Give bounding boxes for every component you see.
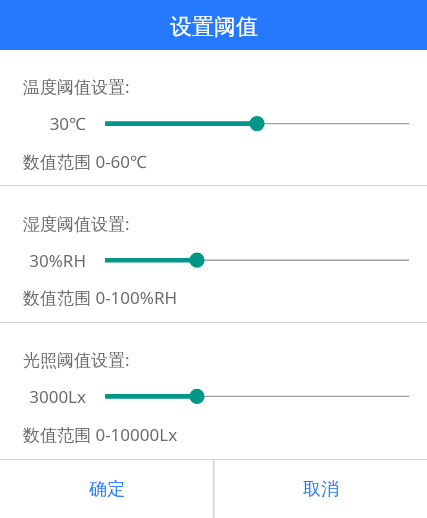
button[interactable]: 光照阈值滑块	[95, 382, 419, 410]
button[interactable]: 湿度阈值滑块	[95, 246, 419, 274]
staticText: 取消	[303, 478, 339, 501]
staticText: 确定	[89, 478, 125, 501]
staticText: 温度阈值设置:	[23, 75, 130, 98]
staticText: 光照阈值设置:	[23, 348, 130, 371]
button[interactable]: 取消	[215, 460, 427, 518]
staticText: 湿度阈值设置:	[23, 212, 130, 235]
staticText: 30℃	[0, 112, 86, 135]
staticText: 3000Lx	[0, 385, 86, 408]
staticText: 设置阈值	[170, 13, 258, 41]
button[interactable]: 温度阈值滑块	[95, 110, 419, 138]
staticText: 数值范围 0-60℃	[23, 150, 147, 173]
staticText: 30%RH	[0, 249, 86, 272]
staticText: 数值范围 0-100%RH	[23, 286, 178, 309]
button[interactable]: 确定	[0, 460, 214, 518]
staticText: 数值范围 0-10000Lx	[23, 423, 178, 446]
